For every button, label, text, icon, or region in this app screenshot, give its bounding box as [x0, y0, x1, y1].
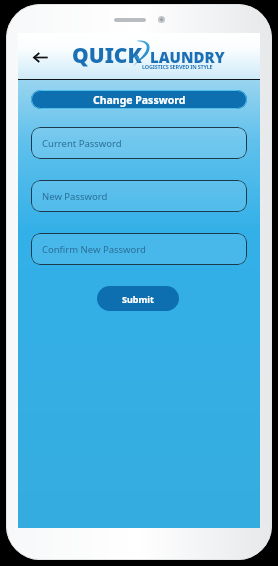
staticText: Confirm New Password: [42, 243, 146, 256]
staticText: QUICK: [72, 41, 142, 70]
staticText: Submit: [122, 293, 154, 305]
button[interactable]: Submit: [97, 286, 179, 311]
button[interactable]: New Password: [31, 180, 247, 212]
staticText: LOGISTICS SERVED IN STYLE: [142, 63, 213, 70]
staticText: Current Password: [42, 137, 122, 150]
staticText: New Password: [42, 190, 108, 203]
button[interactable]: Current Password: [31, 127, 247, 159]
button[interactable]: Confirm New Password: [31, 233, 247, 265]
staticText: Change Password: [93, 93, 186, 107]
button[interactable]: Change Password: [31, 90, 247, 109]
button[interactable]: Back: [24, 41, 56, 73]
staticText: LAUNDRY: [150, 47, 225, 67]
